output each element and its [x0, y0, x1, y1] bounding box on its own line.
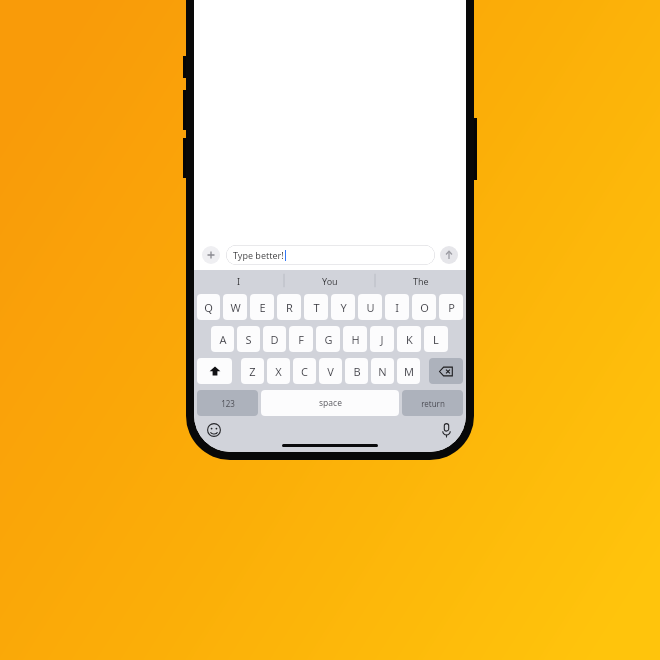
button[interactable]: space — [261, 390, 399, 416]
button[interactable]: G — [316, 326, 340, 352]
button[interactable]: Z — [241, 358, 264, 384]
staticText: H — [351, 332, 360, 347]
button[interactable]: V — [319, 358, 342, 384]
button[interactable]: M — [397, 358, 420, 384]
button[interactable]: Y — [331, 294, 355, 320]
staticText: T — [313, 300, 320, 315]
button[interactable]: Send — [440, 246, 458, 264]
button[interactable]: D — [263, 326, 286, 352]
button[interactable]: Add attachment — [202, 246, 220, 264]
button[interactable]: Q — [197, 294, 220, 320]
button[interactable]: I — [194, 270, 284, 291]
button[interactable]: O — [412, 294, 436, 320]
staticText: W — [230, 300, 241, 315]
button[interactable]: L — [424, 326, 448, 352]
button[interactable]: Dictate — [437, 421, 455, 439]
staticText: G — [324, 332, 333, 347]
button[interactable]: Emoji keyboard — [205, 421, 223, 439]
button[interactable]: T — [304, 294, 328, 320]
staticText: M — [404, 364, 414, 379]
staticText: D — [270, 332, 279, 347]
staticText: B — [353, 364, 361, 379]
button[interactable]: E — [250, 294, 274, 320]
staticText: X — [275, 364, 282, 379]
button[interactable]: C — [293, 358, 316, 384]
staticText: R — [286, 300, 293, 315]
button[interactable]: J — [370, 326, 394, 352]
staticText: F — [298, 332, 304, 347]
staticText: I — [395, 300, 399, 315]
staticText: C — [301, 364, 308, 379]
button[interactable]: B — [345, 358, 368, 384]
staticText: L — [433, 332, 439, 347]
button[interactable]: The — [375, 270, 466, 291]
staticText: E — [259, 300, 266, 315]
button[interactable]: You — [284, 270, 375, 291]
staticText: Z — [249, 364, 256, 379]
button[interactable]: Type better! — [226, 245, 435, 265]
button[interactable]: Shift — [197, 358, 232, 384]
button[interactable]: I — [385, 294, 409, 320]
button[interactable]: R — [277, 294, 301, 320]
staticText: A — [219, 332, 227, 347]
staticText: 123 — [221, 398, 235, 409]
button[interactable]: F — [289, 326, 313, 352]
staticText: U — [366, 300, 375, 315]
staticText: You — [322, 275, 338, 287]
staticText: O — [420, 300, 429, 315]
staticText: N — [378, 364, 387, 379]
button[interactable]: S — [237, 326, 260, 352]
staticText: S — [245, 332, 252, 347]
button[interactable]: P — [439, 294, 463, 320]
button[interactable]: return — [402, 390, 463, 416]
staticText: Type better! — [233, 249, 284, 261]
button[interactable]: A — [211, 326, 234, 352]
staticText: return — [421, 398, 445, 409]
button[interactable]: Backspace — [429, 358, 463, 384]
staticText: J — [380, 332, 384, 347]
staticText: V — [327, 364, 334, 379]
button[interactable]: W — [223, 294, 247, 320]
staticText: P — [448, 300, 455, 315]
button[interactable]: N — [371, 358, 394, 384]
staticText: The — [413, 275, 429, 287]
button[interactable]: X — [267, 358, 290, 384]
button[interactable]: K — [397, 326, 421, 352]
staticText: K — [406, 332, 413, 347]
staticText: Q — [204, 300, 213, 315]
button[interactable]: H — [343, 326, 367, 352]
button[interactable]: U — [358, 294, 382, 320]
staticText: I — [237, 275, 241, 287]
staticText: Y — [340, 300, 347, 315]
button[interactable]: 123 — [197, 390, 258, 416]
staticText: space — [319, 397, 342, 409]
